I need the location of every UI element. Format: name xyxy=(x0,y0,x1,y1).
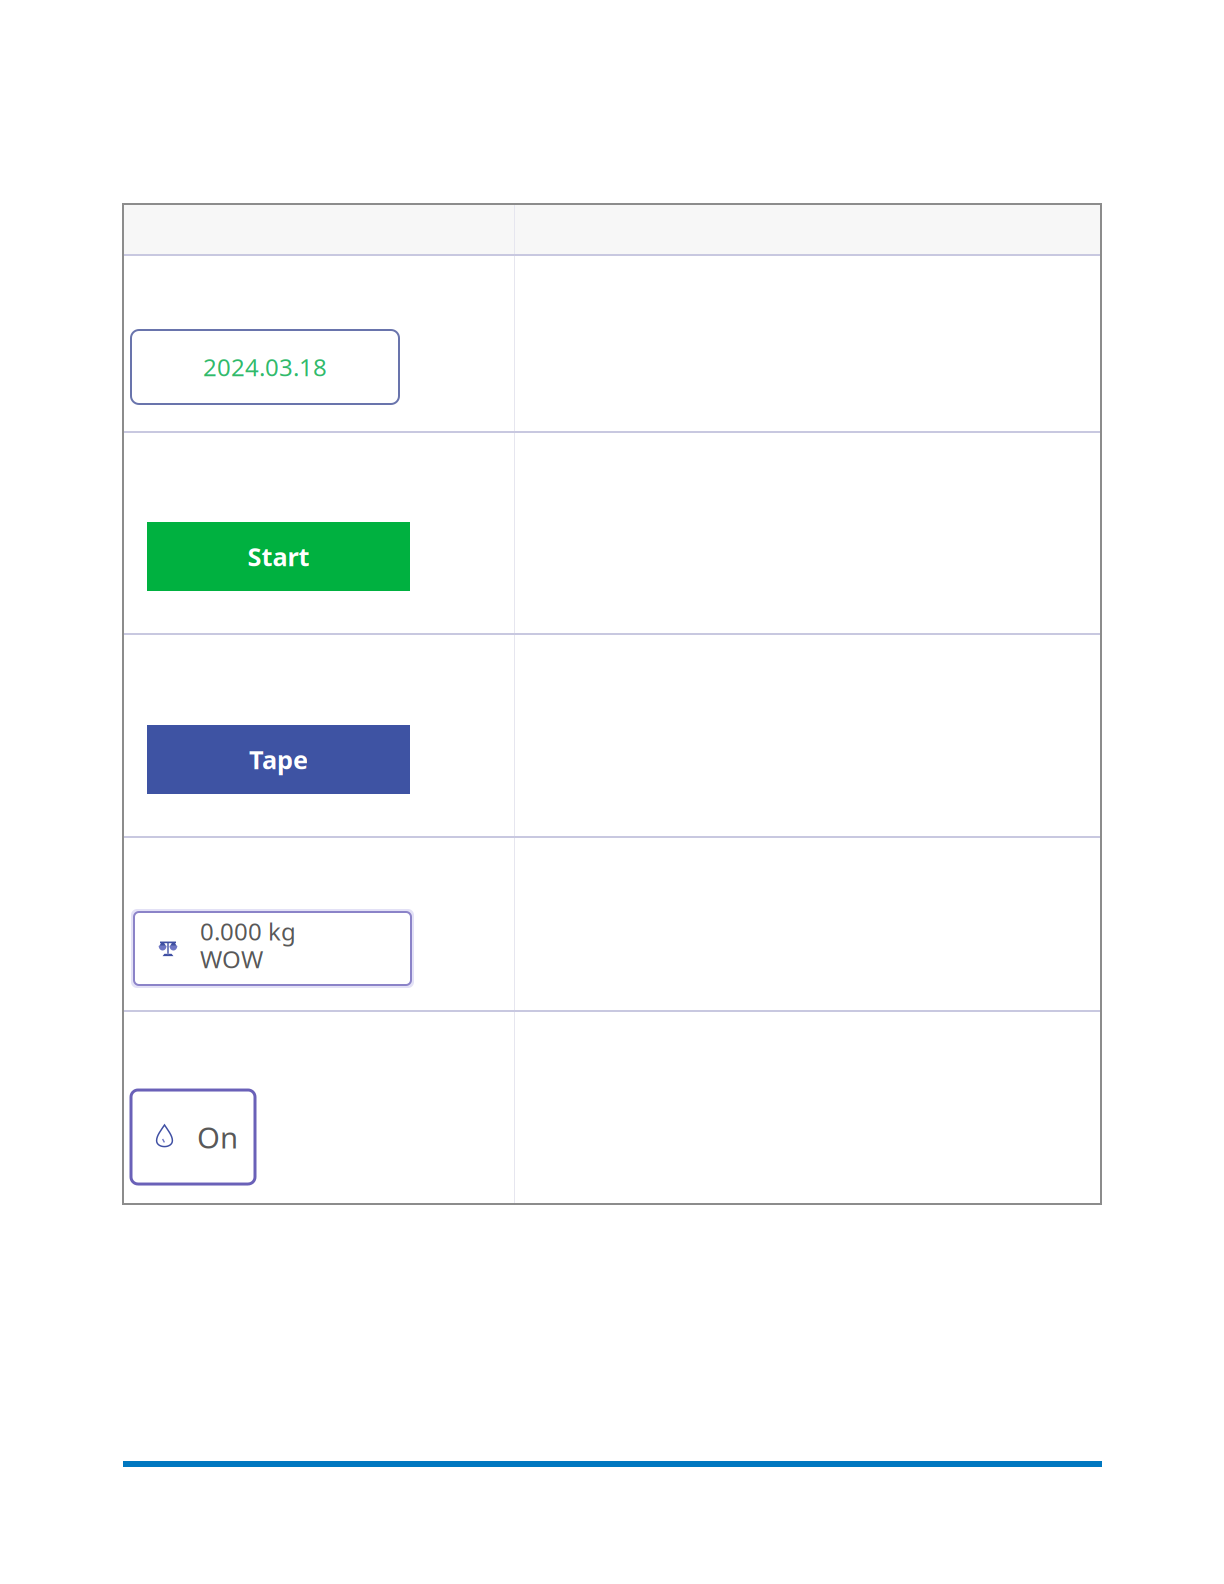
button[interactable]: 2024.03.18 xyxy=(131,330,399,404)
staticText: 0.000 kg xyxy=(200,915,296,947)
staticText: Tape xyxy=(249,743,308,776)
staticText: Start xyxy=(247,540,309,573)
button[interactable]: Start xyxy=(147,522,410,591)
button[interactable]: 0.000 kg xyxy=(131,909,414,988)
staticText: On xyxy=(197,1117,238,1156)
staticText: WOW xyxy=(200,943,263,975)
staticText: 2024.03.18 xyxy=(203,351,327,383)
button[interactable]: Tape xyxy=(147,725,410,794)
button[interactable]: On xyxy=(131,1090,255,1184)
